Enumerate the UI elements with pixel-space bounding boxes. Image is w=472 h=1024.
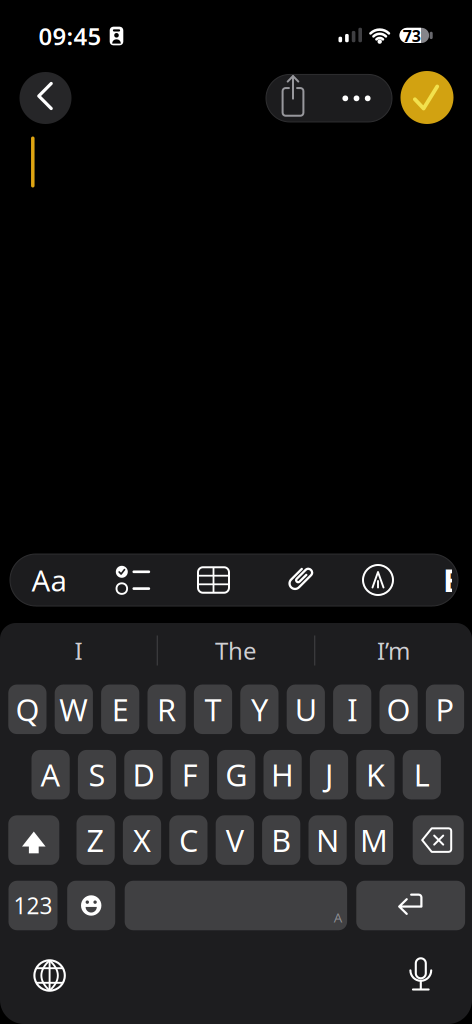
button[interactable] <box>104 554 164 606</box>
button[interactable]: Aa <box>19 554 79 606</box>
button[interactable] <box>331 74 383 122</box>
staticText: I <box>347 689 357 730</box>
button[interactable]: I <box>9 628 149 672</box>
button[interactable]: S <box>78 750 116 799</box>
staticText: N <box>316 820 339 860</box>
button[interactable]: X <box>123 815 161 865</box>
button[interactable]: F <box>171 750 209 799</box>
staticText: M <box>360 820 388 860</box>
staticText: I <box>75 635 83 666</box>
staticText: S <box>88 754 105 795</box>
button[interactable] <box>356 881 465 930</box>
button[interactable]: K <box>356 750 394 799</box>
button[interactable]: A <box>125 881 347 930</box>
staticText: C <box>179 820 198 860</box>
button[interactable] <box>183 554 243 606</box>
button[interactable] <box>19 72 71 124</box>
button[interactable]: G <box>217 750 255 799</box>
staticText: E <box>112 689 129 730</box>
button[interactable]: Z <box>76 815 115 865</box>
button[interactable] <box>266 74 320 122</box>
button[interactable]: T <box>194 684 232 734</box>
staticText: O <box>387 689 411 730</box>
button[interactable]: J <box>310 750 348 799</box>
staticText: 09:45 <box>38 20 101 52</box>
staticText: The <box>215 635 257 666</box>
button[interactable] <box>67 881 115 930</box>
button[interactable] <box>399 949 443 993</box>
button[interactable]: C <box>169 815 207 865</box>
button[interactable]: Y <box>240 684 278 734</box>
staticText: B <box>443 559 464 601</box>
button[interactable]: U <box>287 684 325 734</box>
button[interactable]: Q <box>8 684 46 734</box>
staticText: U <box>295 689 317 730</box>
staticText: H <box>271 754 294 795</box>
button[interactable]: E <box>101 684 139 734</box>
button[interactable]: A <box>31 750 70 799</box>
button[interactable]: V <box>216 815 254 865</box>
staticText: 73 <box>403 25 421 46</box>
button[interactable]: N <box>308 815 347 865</box>
button[interactable] <box>28 953 72 997</box>
button[interactable] <box>8 815 59 865</box>
staticText: X <box>133 820 151 860</box>
staticText: B <box>271 820 291 860</box>
button[interactable]: R <box>147 684 186 734</box>
staticText: Z <box>87 820 105 860</box>
staticText: W <box>59 689 88 730</box>
staticText: R <box>157 689 176 730</box>
staticText: F <box>182 754 198 795</box>
button[interactable] <box>413 815 464 865</box>
button[interactable]: P <box>426 684 464 734</box>
button[interactable] <box>31 136 34 187</box>
button[interactable]: I’m <box>323 628 463 672</box>
button[interactable] <box>270 552 330 604</box>
staticText: Q <box>15 689 39 730</box>
button[interactable]: B <box>443 565 452 595</box>
staticText: Y <box>251 689 268 730</box>
staticText: V <box>226 820 244 860</box>
staticText: L <box>414 754 430 795</box>
button[interactable]: 123 <box>8 881 57 930</box>
button[interactable]: W <box>55 684 93 734</box>
button[interactable]: L <box>403 750 441 799</box>
button[interactable]: D <box>124 750 162 799</box>
staticText: G <box>225 754 247 795</box>
button[interactable]: The <box>166 628 306 672</box>
button[interactable] <box>400 71 453 124</box>
staticText: Aa <box>31 560 66 599</box>
button[interactable]: I <box>333 684 371 734</box>
staticText: K <box>366 754 385 795</box>
staticText: 123 <box>13 890 52 920</box>
staticText: A <box>41 754 61 795</box>
staticText: I’m <box>377 635 410 666</box>
button[interactable]: M <box>355 815 393 865</box>
staticText: P <box>435 689 454 730</box>
button[interactable]: O <box>379 684 418 734</box>
button[interactable]: B <box>262 815 300 865</box>
staticText: T <box>204 689 221 730</box>
button[interactable] <box>348 554 408 606</box>
staticText: J <box>325 754 333 795</box>
staticText: A <box>334 908 343 926</box>
button[interactable]: H <box>263 750 302 799</box>
staticText: D <box>132 754 154 795</box>
